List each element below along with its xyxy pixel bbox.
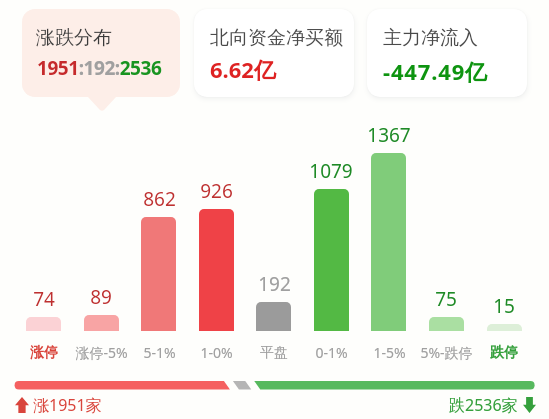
staticText: 涨停-5% [75, 343, 128, 362]
staticText: 1951:192:2536 [37, 55, 162, 81]
staticText: 跌停 [490, 344, 518, 362]
staticText: 15 [493, 293, 515, 319]
staticText: 5-1% [143, 343, 176, 362]
staticText: -447.49亿 [383, 56, 488, 86]
button[interactable]: Advancing stocks [15, 394, 102, 416]
staticText: 1-5% [373, 343, 406, 362]
staticText: 跌2536家 [449, 394, 518, 416]
staticText: 主力净流入 [383, 26, 478, 50]
staticText: 89 [90, 284, 112, 310]
other: Advancing stocks [15, 397, 29, 413]
button[interactable]: 跌2536家 [449, 394, 536, 416]
staticText: 6.62亿 [210, 54, 276, 84]
staticText: 涨跌分布 [36, 26, 112, 50]
staticText: 平盘 [260, 344, 288, 362]
staticText: 0-1% [315, 343, 348, 362]
staticText: 926 [200, 178, 233, 204]
staticText: 1079 [309, 158, 353, 184]
button[interactable]: 北向资金净买额 [194, 9, 354, 97]
staticText: 1-0% [200, 343, 233, 362]
staticText: 862 [143, 186, 176, 212]
button[interactable]: 主力净流入 [367, 9, 527, 97]
button[interactable]: 涨跌分布 [22, 9, 180, 97]
staticText: 75 [435, 286, 457, 312]
staticText: 192 [258, 271, 291, 297]
staticText: 涨停 [30, 344, 58, 362]
staticText: 涨1951家 [33, 394, 102, 416]
staticText: 74 [33, 286, 55, 312]
staticText: 北向资金净买额 [210, 26, 343, 50]
staticText: 1367 [367, 122, 411, 148]
other: Declining stocks [523, 397, 536, 413]
staticText: 5%-跌停 [420, 343, 473, 362]
